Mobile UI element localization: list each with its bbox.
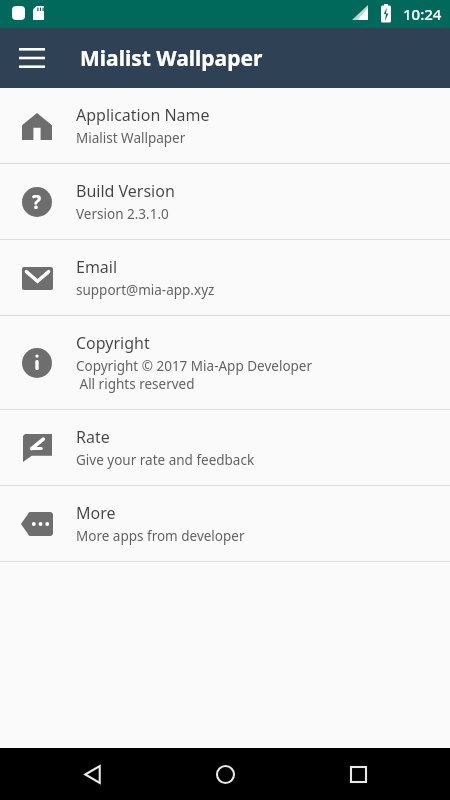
button[interactable]: Open navigation menu	[8, 34, 56, 82]
button[interactable]: Home	[203, 752, 247, 796]
button[interactable]: Email	[0, 240, 450, 315]
staticText: Mialist Wallpaper	[76, 129, 186, 147]
staticText: Copyright © 2017 Mia-App Developer	[76, 357, 313, 375]
staticText: All rights reserved	[76, 375, 195, 393]
button[interactable]: Recent apps	[336, 752, 380, 796]
staticText: Rate	[76, 426, 110, 448]
staticText: Copyright	[76, 332, 150, 354]
staticText: Application Name	[76, 104, 210, 126]
staticText: 10:24	[403, 4, 442, 24]
staticText: Build Version	[76, 180, 175, 202]
button[interactable]: Rate	[0, 410, 450, 485]
staticText: ?	[32, 189, 42, 215]
staticText: Mialist Wallpaper	[80, 44, 263, 73]
staticText: Give your rate and feedback	[76, 451, 255, 469]
button[interactable]: ?	[0, 164, 450, 239]
staticText: support@mia-app.xyz	[76, 281, 215, 299]
staticText: More	[76, 502, 116, 524]
button[interactable]: More	[0, 486, 450, 561]
button[interactable]: Back	[70, 752, 114, 796]
button[interactable]: Application Name	[0, 88, 450, 163]
button[interactable]: Copyright	[0, 316, 450, 409]
staticText: More apps from developer	[76, 527, 245, 545]
staticText: Email	[76, 256, 118, 278]
staticText: Version 2.3.1.0	[76, 205, 169, 223]
